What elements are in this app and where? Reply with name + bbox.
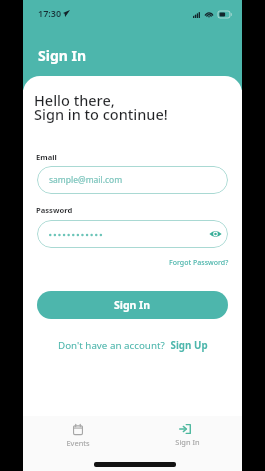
staticText: Sign In [114, 298, 151, 312]
button[interactable]: Show password [206, 226, 222, 242]
staticText: Events [66, 438, 90, 448]
staticText: 17:30 [38, 7, 62, 19]
button[interactable]: Sign Up [168, 339, 208, 352]
button[interactable]: Show password [37, 220, 228, 248]
staticText: Password [36, 205, 73, 215]
staticText: Sign In [38, 46, 87, 65]
staticText: Email [36, 152, 57, 162]
staticText: Forgot Password? [169, 258, 229, 268]
button[interactable]: Events [46, 420, 110, 452]
staticText: Sign In [175, 437, 200, 447]
button[interactable]: sample@mail.com [37, 166, 228, 194]
staticText: Hello there, Sign in to continue! [34, 90, 168, 125]
staticText: sample@mail.com [49, 174, 123, 186]
button[interactable]: Sign In [155, 420, 220, 451]
button[interactable]: Sign In [37, 291, 228, 319]
staticText: Sign Up [168, 339, 208, 352]
button[interactable]: Forgot Password? [169, 258, 229, 268]
staticText: Don't have an account? [58, 339, 168, 352]
